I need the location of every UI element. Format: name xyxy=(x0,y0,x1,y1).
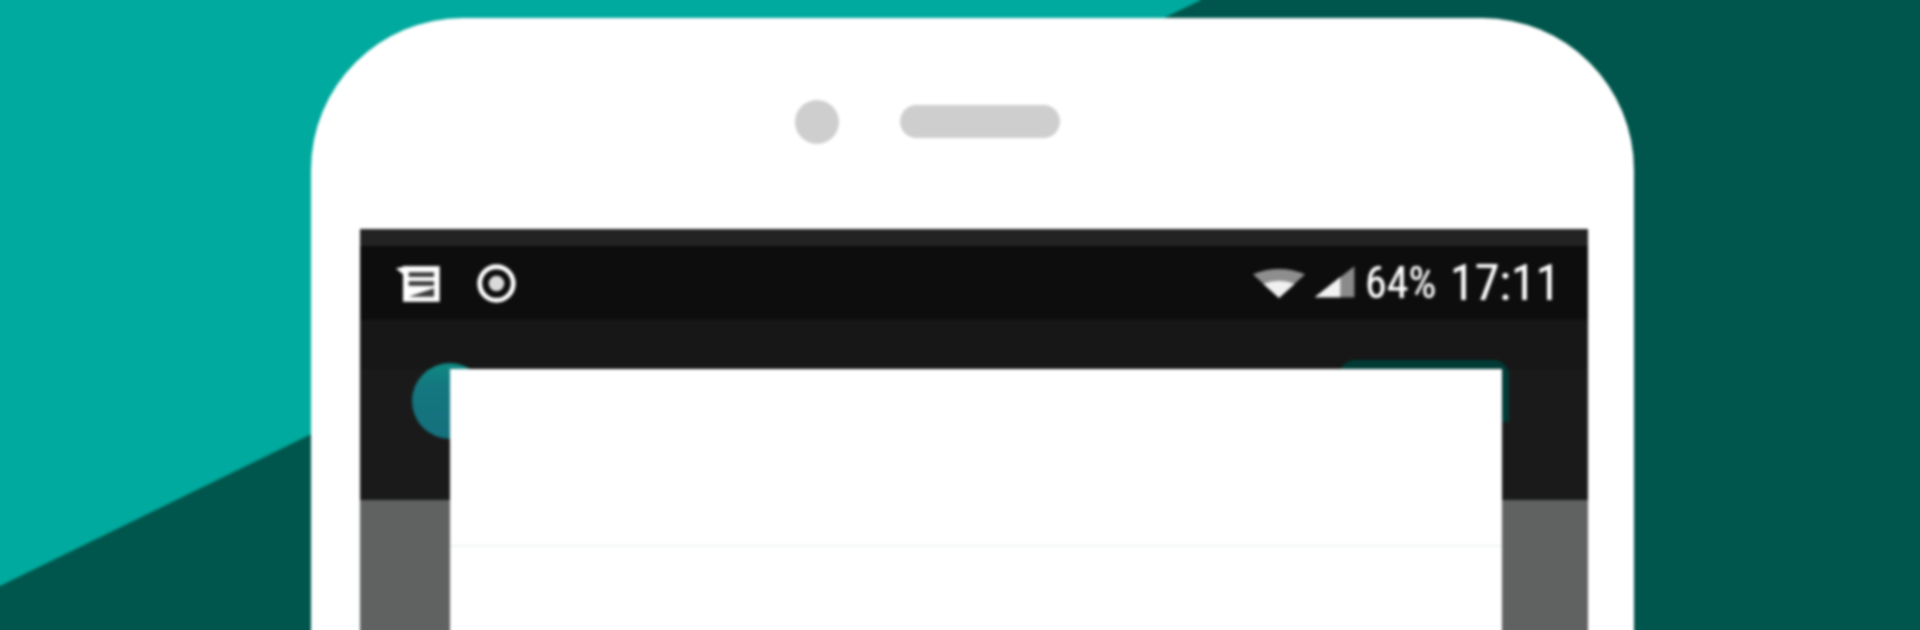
other: Mobile signal xyxy=(1313,262,1357,304)
other: Do not disturb xyxy=(477,264,516,303)
button[interactable] xyxy=(450,369,1502,630)
staticText: 17:11 xyxy=(1450,254,1561,313)
staticText: 64% xyxy=(1365,257,1437,309)
other: Wi-Fi xyxy=(1250,261,1308,305)
button[interactable]: Compose xyxy=(412,363,488,439)
other: Notification xyxy=(396,260,443,307)
button[interactable]: Open card xyxy=(1339,360,1509,422)
